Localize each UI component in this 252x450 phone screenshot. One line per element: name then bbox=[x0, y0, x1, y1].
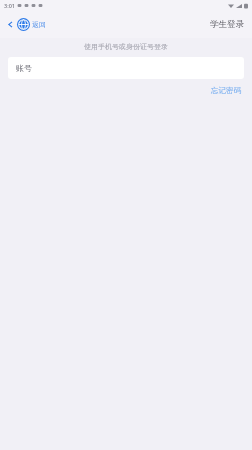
button[interactable]: 忘记密码 bbox=[209, 85, 243, 96]
button[interactable]: 账号 bbox=[8, 57, 244, 79]
other: App logo bbox=[17, 18, 30, 31]
other: Back bbox=[7, 21, 14, 28]
staticText: 忘记密码 bbox=[211, 86, 241, 95]
staticText: 返回 bbox=[32, 20, 46, 29]
staticText: 3:01 bbox=[4, 2, 15, 9]
staticText: 使用手机号或身份证号登录 bbox=[0, 42, 252, 51]
staticText: 账号 bbox=[16, 63, 32, 73]
staticText: 学生登录 bbox=[210, 19, 244, 30]
button[interactable]: Back bbox=[4, 16, 49, 33]
